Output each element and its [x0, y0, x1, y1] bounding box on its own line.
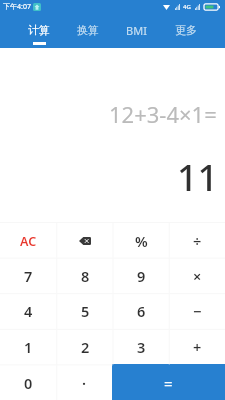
- staticText: 2: [81, 337, 90, 357]
- button[interactable]: 2: [57, 328, 113, 364]
- staticText: ·: [82, 373, 87, 393]
- button[interactable]: 计算: [15, 14, 63, 48]
- button[interactable]: 7: [0, 257, 57, 292]
- button[interactable]: 5: [57, 292, 113, 328]
- staticText: AC: [20, 233, 37, 250]
- staticText: 3: [137, 337, 146, 357]
- staticText: 下午4:07: [3, 2, 31, 12]
- staticText: +: [193, 337, 202, 357]
- staticText: 4: [24, 301, 33, 321]
- other: Delete: [79, 237, 91, 245]
- staticText: 0: [24, 373, 33, 393]
- button[interactable]: 更多: [161, 14, 210, 48]
- staticText: 8: [81, 266, 90, 286]
- button[interactable]: +: [169, 328, 225, 364]
- staticText: 计算: [28, 23, 50, 37]
- staticText: ÷: [193, 231, 202, 251]
- button[interactable]: ÷: [169, 222, 225, 257]
- button[interactable]: ×: [169, 257, 225, 292]
- staticText: 更多: [175, 23, 197, 37]
- staticText: 12+3-4×1=: [109, 99, 217, 129]
- button[interactable]: 6: [113, 292, 169, 328]
- staticText: 换算: [77, 23, 99, 37]
- staticText: =: [164, 373, 173, 393]
- button[interactable]: ·: [56, 364, 112, 400]
- staticText: 5: [81, 301, 90, 321]
- staticText: BMI: [126, 23, 147, 38]
- staticText: 9: [137, 266, 146, 286]
- staticText: %: [135, 231, 148, 251]
- button[interactable]: BMI: [112, 14, 161, 48]
- button[interactable]: %: [113, 222, 169, 257]
- staticText: 11: [177, 153, 219, 202]
- button[interactable]: 1: [0, 328, 57, 364]
- staticText: 1: [24, 337, 33, 357]
- staticText: 7: [24, 266, 33, 286]
- button[interactable]: 3: [113, 328, 169, 364]
- button[interactable]: −: [169, 292, 225, 328]
- button[interactable]: 0: [0, 364, 56, 400]
- button[interactable]: Delete: [57, 222, 113, 257]
- button[interactable]: 9: [113, 257, 169, 292]
- staticText: 6: [137, 301, 146, 321]
- button[interactable]: 4: [0, 292, 57, 328]
- staticText: −: [193, 301, 202, 321]
- button[interactable]: 换算: [63, 14, 112, 48]
- button[interactable]: =: [112, 364, 225, 400]
- staticText: ×: [193, 266, 202, 286]
- staticText: 4G: [183, 3, 191, 11]
- button[interactable]: 8: [57, 257, 113, 292]
- button[interactable]: AC: [0, 222, 57, 257]
